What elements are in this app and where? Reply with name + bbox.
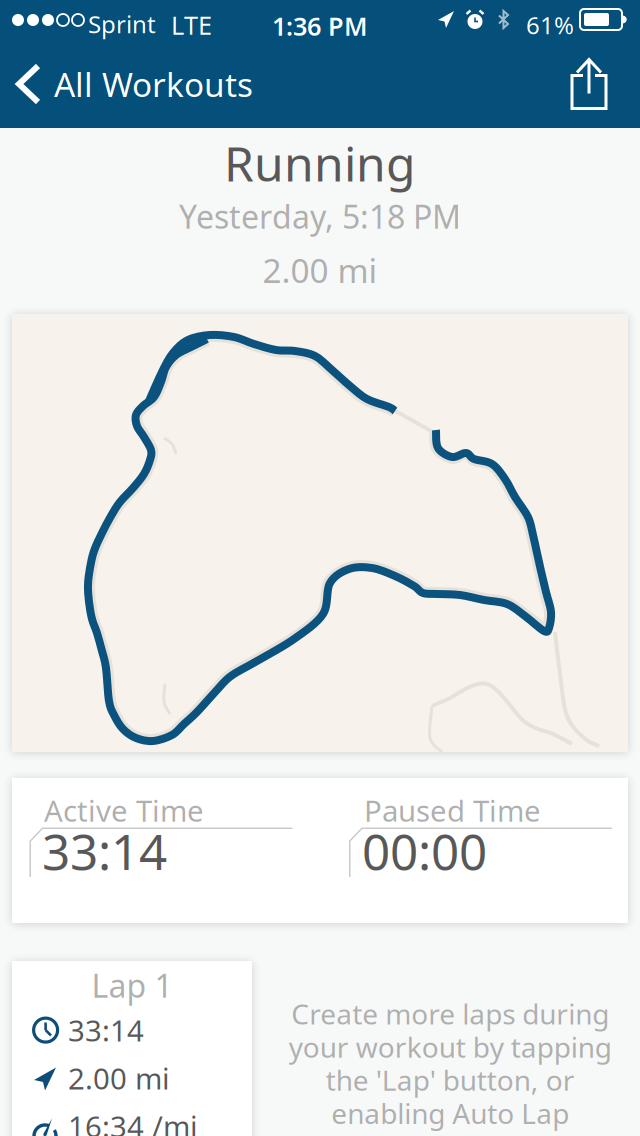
staticText: 2.00 mi	[68, 1058, 170, 1097]
staticText: Running	[224, 131, 416, 195]
staticText: Active Time	[44, 791, 204, 830]
staticText: Lap 1	[91, 964, 172, 1006]
staticText: Paused Time	[364, 791, 541, 830]
staticText: 00:00	[362, 818, 487, 883]
staticText: 33:14	[42, 818, 167, 883]
staticText: LTE	[171, 8, 212, 42]
staticText: 1:36 PM	[272, 9, 368, 43]
staticText: 33:14	[68, 1010, 144, 1049]
staticText: 16:34 /mi	[68, 1106, 198, 1136]
button[interactable]: All Workouts	[0, 44, 267, 124]
staticText: 61%	[526, 9, 574, 41]
staticText: Sprint	[88, 8, 156, 40]
staticText: Yesterday, 5:18 PM	[179, 195, 461, 237]
staticText: 2.00 mi	[262, 248, 377, 292]
button[interactable]: Share	[546, 42, 640, 125]
staticText: All Workouts	[54, 62, 253, 106]
staticText: Create more laps during your workout by …	[288, 995, 611, 1132]
